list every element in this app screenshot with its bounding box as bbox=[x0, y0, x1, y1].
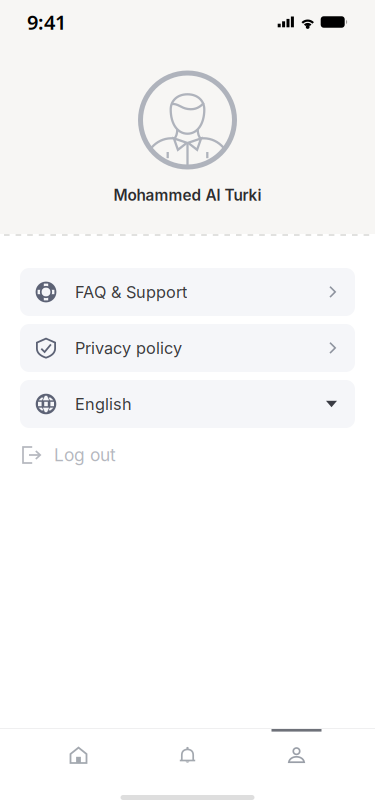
staticText: Privacy policy bbox=[75, 338, 182, 358]
button[interactable]: Profile bbox=[242, 729, 351, 783]
staticText: FAQ & Support bbox=[75, 282, 187, 302]
button[interactable]: Privacy policy bbox=[20, 324, 355, 372]
staticText: Mohammed Al Turki bbox=[113, 186, 261, 205]
button[interactable]: Log out bbox=[0, 438, 375, 472]
staticText: Log out bbox=[54, 444, 116, 465]
button[interactable]: Notifications bbox=[133, 729, 242, 783]
button[interactable]: English bbox=[20, 380, 355, 428]
button[interactable]: Home bbox=[24, 729, 133, 783]
button[interactable]: FAQ & Support bbox=[20, 268, 355, 316]
staticText: English bbox=[75, 394, 132, 414]
staticText: 9:41 bbox=[27, 9, 66, 35]
